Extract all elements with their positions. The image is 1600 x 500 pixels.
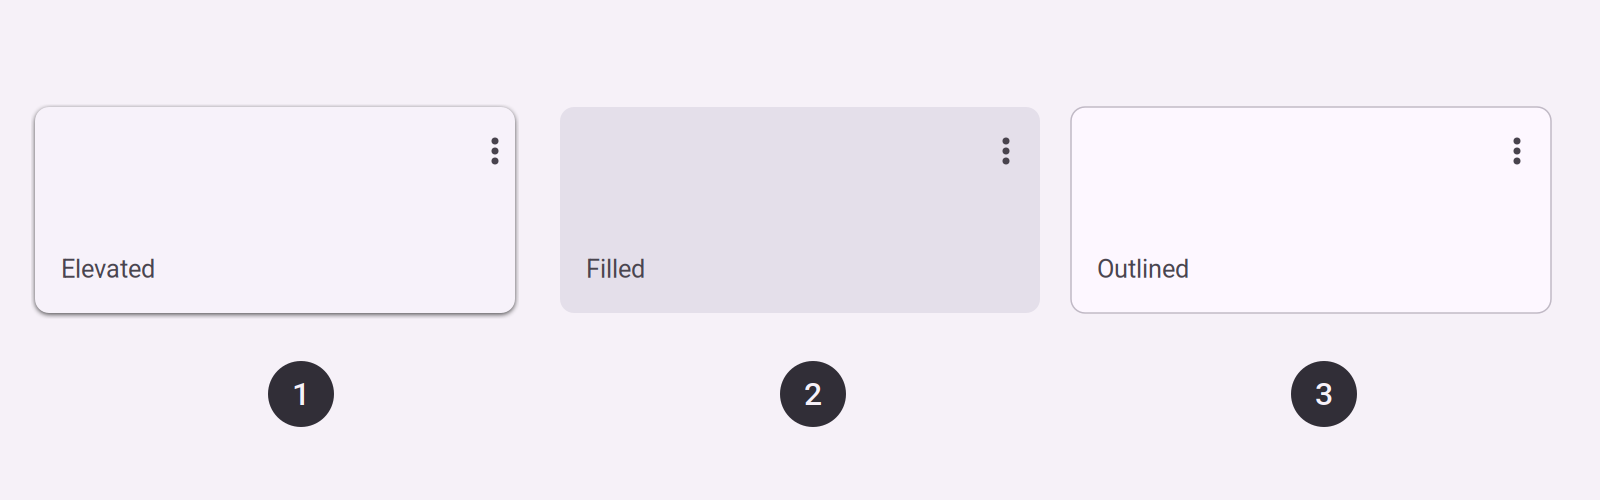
staticText: 1 (292, 375, 310, 413)
staticText: Elevated (61, 254, 155, 284)
staticText: Filled (586, 254, 645, 284)
staticText: Outlined (1097, 254, 1189, 284)
button[interactable]: More options (475, 131, 515, 171)
button[interactable]: More options (986, 131, 1026, 171)
button[interactable]: Outlined (1071, 107, 1551, 313)
button[interactable]: More options (1497, 131, 1537, 171)
staticText: 3 (1315, 375, 1333, 413)
button[interactable]: Elevated (35, 107, 515, 313)
button[interactable]: Filled (560, 107, 1040, 313)
staticText: 2 (804, 375, 822, 413)
